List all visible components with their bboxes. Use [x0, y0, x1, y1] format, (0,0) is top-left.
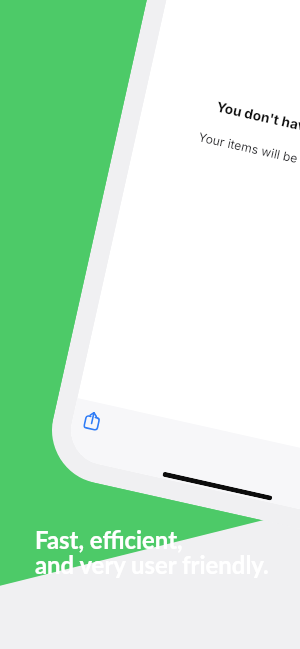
- staticText: Your items will be displayed here: [137, 116, 300, 199]
- button[interactable]: Share: [83, 410, 101, 431]
- staticText: You don't have any items: [144, 83, 300, 167]
- staticText: Fast, efficient, and very user friendly.: [35, 525, 269, 579]
